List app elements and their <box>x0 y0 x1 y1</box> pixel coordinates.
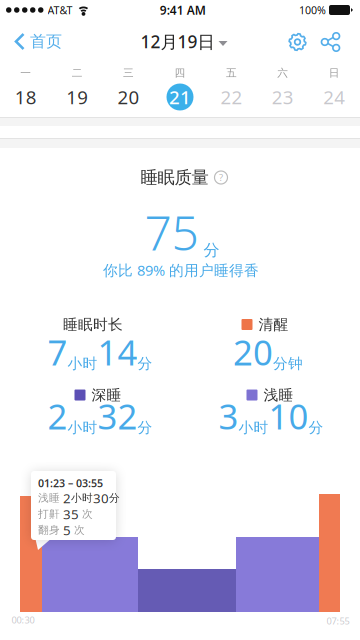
button[interactable]: 帮助 <box>214 171 227 184</box>
staticText: 四 <box>174 66 185 79</box>
staticText: 75 分 <box>144 200 219 264</box>
staticText: 22 <box>220 85 242 109</box>
button[interactable]: 分享 <box>315 26 346 57</box>
staticText: 23 <box>272 85 294 109</box>
staticText: 你比 89% 的用户睡得香 <box>103 260 259 280</box>
button[interactable]: 四 <box>154 64 206 117</box>
button[interactable]: 三 <box>103 64 154 117</box>
staticText: 100% <box>299 3 326 17</box>
button[interactable]: 设置 <box>282 26 313 57</box>
button[interactable]: 首页 <box>6 24 70 59</box>
staticText: 7小时14分 <box>47 329 152 375</box>
staticText: 睡眠时长 <box>63 315 123 333</box>
staticText: 浅睡 <box>263 386 293 404</box>
staticText: 30 <box>93 489 109 507</box>
staticText: 清醒 <box>258 315 288 333</box>
staticText: 3小时10分 <box>218 393 323 439</box>
staticText: 9:41 AM <box>160 2 206 18</box>
staticText: 19 <box>66 85 88 109</box>
staticText: 日 <box>329 66 340 79</box>
staticText: ? <box>219 171 223 184</box>
button[interactable]: 日 <box>309 64 360 117</box>
staticText: 深睡 <box>91 386 121 404</box>
staticText: AT&T <box>47 3 72 17</box>
staticText: 20 <box>118 85 140 109</box>
staticText: 2小时32分 <box>47 393 152 439</box>
staticText: 07:55 <box>326 615 349 627</box>
staticText: 五 <box>226 66 237 79</box>
staticText: 次 <box>82 507 93 520</box>
staticText: 00:30 <box>11 614 34 626</box>
staticText: 二 <box>72 66 83 79</box>
button[interactable]: 12月19日 <box>132 20 235 63</box>
button[interactable]: 一 <box>0 64 51 117</box>
staticText: 2 <box>63 489 71 507</box>
button[interactable]: 六 <box>257 64 308 117</box>
staticText: 翻身 <box>38 523 60 536</box>
staticText: 打鼾 <box>38 507 60 520</box>
staticText: 一 <box>20 66 31 79</box>
staticText: 24 <box>323 85 345 109</box>
staticText: 01:23 – 03:55 <box>38 476 103 490</box>
staticText: 小时 <box>71 491 93 504</box>
staticText: 睡眠质量 <box>140 167 208 188</box>
staticText: 18 <box>15 85 37 109</box>
staticText: 5 <box>63 521 71 539</box>
staticText: 次 <box>74 523 85 536</box>
staticText: 三 <box>123 66 134 79</box>
staticText: 首页 <box>30 32 62 51</box>
staticText: 六 <box>277 66 288 79</box>
button[interactable]: 二 <box>51 64 103 117</box>
staticText: 20分钟 <box>233 329 303 375</box>
staticText: 12月19日 <box>140 30 214 53</box>
staticText: 分 <box>109 491 120 504</box>
staticText: 浅睡 <box>38 491 60 504</box>
staticText: 35 <box>63 505 79 523</box>
staticText: 21 <box>169 85 191 109</box>
button[interactable]: 五 <box>206 64 257 117</box>
